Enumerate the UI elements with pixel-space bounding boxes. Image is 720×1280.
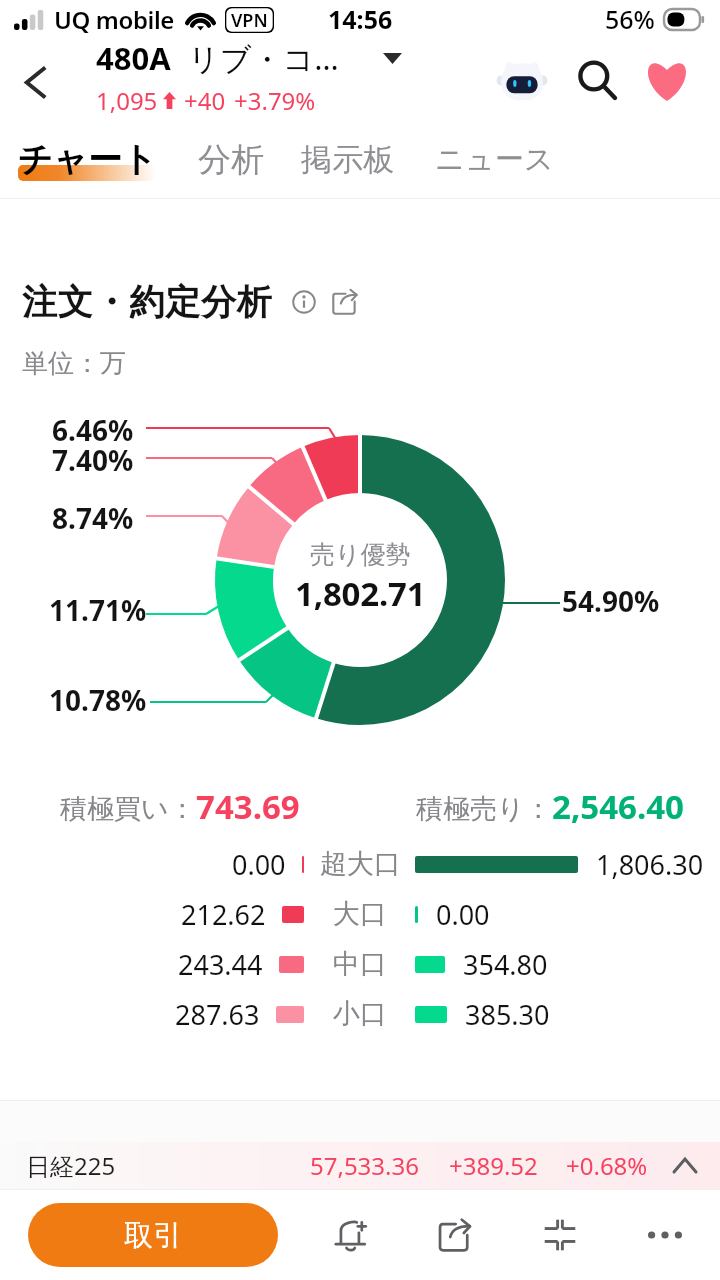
button[interactable]: 分析 (198, 139, 265, 181)
staticText: 取引 (124, 1217, 182, 1254)
staticText: 8.74% (52, 499, 134, 537)
staticText: 56% (605, 2, 655, 36)
staticText: 10.78% (49, 681, 147, 719)
staticText: 743.69 (196, 784, 300, 829)
staticText: 中口 (333, 947, 387, 981)
button[interactable]: 取引 (28, 1203, 278, 1267)
staticText: 11.71% (49, 591, 147, 629)
staticText: +389.52 (449, 1149, 538, 1182)
button[interactable]: Info (287, 285, 321, 319)
staticText: 注文・約定分析 (22, 280, 273, 324)
staticText: 分析 (198, 139, 265, 181)
staticText: 6.46% (52, 411, 134, 449)
button[interactable]: Favorite (632, 45, 702, 115)
staticText: 1,806.30 (596, 846, 704, 883)
staticText: 超大口 (320, 847, 401, 881)
staticText: 積極売り： (416, 792, 552, 826)
staticText: 243.44 (178, 946, 263, 983)
staticText: ニュース (435, 141, 554, 178)
staticText: 小口 (333, 997, 387, 1031)
button[interactable]: AI assistant (482, 40, 562, 120)
staticText: 287.63 (175, 996, 260, 1033)
button[interactable]: Alert (320, 1204, 382, 1266)
staticText: UQ mobile (54, 3, 174, 36)
button[interactable]: Collapse (529, 1204, 591, 1266)
staticText: 2,546.40 (552, 784, 684, 829)
staticText: 480A (96, 37, 171, 79)
staticText: 212.62 (181, 896, 266, 933)
button[interactable]: チャート (18, 138, 158, 181)
staticText: 0.00 (232, 846, 286, 883)
button[interactable]: Share (328, 285, 362, 319)
button[interactable]: Search (562, 45, 632, 115)
staticText: 54.90% (562, 582, 660, 620)
staticText: +3.79% (234, 84, 316, 117)
staticText: VPN (231, 8, 268, 33)
staticText: 1,095 (96, 84, 158, 117)
staticText: 7.40% (52, 441, 134, 479)
button[interactable]: Share (424, 1204, 486, 1266)
staticText: 1,802.71 (295, 571, 426, 616)
staticText: 売り優勢 (310, 539, 411, 570)
staticText: 日経225 (26, 1149, 116, 1182)
staticText: 掲示板 (301, 140, 395, 179)
staticText: 単位：万 (22, 347, 126, 380)
staticText: リブ・コ… (188, 37, 339, 79)
staticText: 積極買い： (60, 792, 196, 826)
button[interactable]: Back (0, 40, 72, 120)
button[interactable]: More (634, 1204, 696, 1266)
staticText: 57,533.36 (310, 1149, 419, 1182)
staticText: 大口 (333, 897, 387, 931)
staticText: +0.68% (566, 1149, 648, 1182)
staticText: 354.80 (463, 946, 548, 983)
staticText: 14:56 (328, 2, 393, 36)
staticText: 385.30 (465, 996, 550, 1033)
button[interactable]: 日経225 (0, 1142, 720, 1189)
button[interactable]: 掲示板 (301, 140, 395, 179)
staticText: +40 (184, 84, 226, 117)
staticText: 0.00 (436, 896, 490, 933)
button[interactable]: ニュース (435, 141, 554, 178)
staticText: チャート (18, 138, 158, 181)
